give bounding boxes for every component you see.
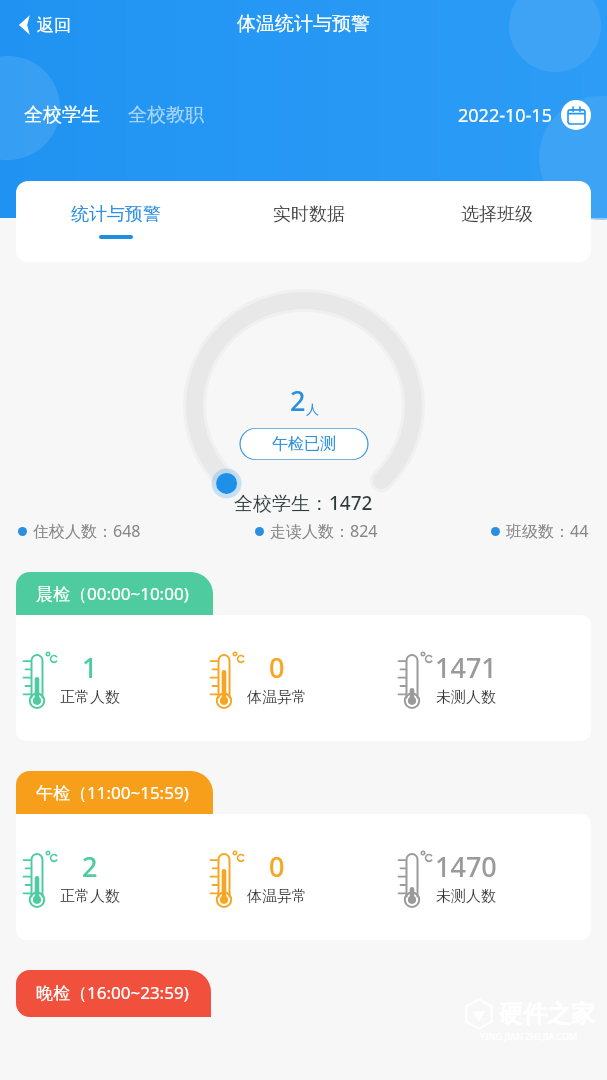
staticText: 住校人数：648 [33, 520, 141, 542]
button[interactable]: 统计与预警 [16, 203, 215, 239]
staticText: 1471 [435, 649, 497, 686]
staticText: 2 [82, 848, 98, 885]
staticText: 正常人数 [60, 688, 120, 707]
staticText: 未测人数 [436, 887, 496, 906]
staticText: 午检（11:00~15:59) [36, 781, 189, 804]
staticText: 返回 [37, 15, 71, 36]
staticText: 实时数据 [273, 203, 345, 226]
staticText: 1470 [435, 848, 497, 885]
staticText: 2022-10-15 [458, 103, 552, 128]
button[interactable]: 选择班级 [403, 203, 591, 235]
button[interactable]: 晚检（16:00~23:59) [16, 970, 211, 1017]
staticText: 人 [306, 401, 319, 417]
staticText: 全校学生：1472 [234, 490, 373, 516]
button[interactable]: 晨检（00:00~10:00) [16, 572, 213, 615]
button[interactable]: 全校教职 [128, 103, 204, 127]
staticText: 晨检（00:00~10:00) [36, 582, 189, 605]
staticText: 硬件之家 [499, 999, 595, 1029]
staticText: 体温异常 [247, 688, 307, 707]
staticText: 2 [290, 382, 306, 419]
staticText: 走读人数：824 [270, 520, 378, 542]
other: Back [16, 14, 32, 36]
staticText: 正常人数 [60, 887, 120, 906]
staticText: 0 [269, 649, 285, 686]
staticText: 未测人数 [436, 688, 496, 707]
button[interactable]: Back [12, 10, 75, 40]
button[interactable]: 午检（11:00~15:59) [16, 771, 213, 814]
other: Pick date [561, 100, 591, 130]
staticText: 晚检（16:00~23:59) [36, 981, 189, 1004]
staticText: 统计与预警 [71, 203, 161, 226]
staticText: 体温异常 [247, 887, 307, 906]
button[interactable]: 午检已测 [239, 428, 369, 460]
button[interactable]: 2022-10-15 [458, 100, 591, 130]
staticText: 班级数：44 [506, 520, 589, 542]
button[interactable]: 实时数据 [215, 203, 403, 235]
staticText: 午检已测 [272, 434, 336, 454]
staticText: 0 [269, 848, 285, 885]
staticText: 体温统计与预警 [237, 12, 370, 36]
button[interactable]: 全校学生 [24, 103, 100, 127]
staticText: 选择班级 [461, 203, 533, 226]
staticText: 1 [82, 649, 98, 686]
